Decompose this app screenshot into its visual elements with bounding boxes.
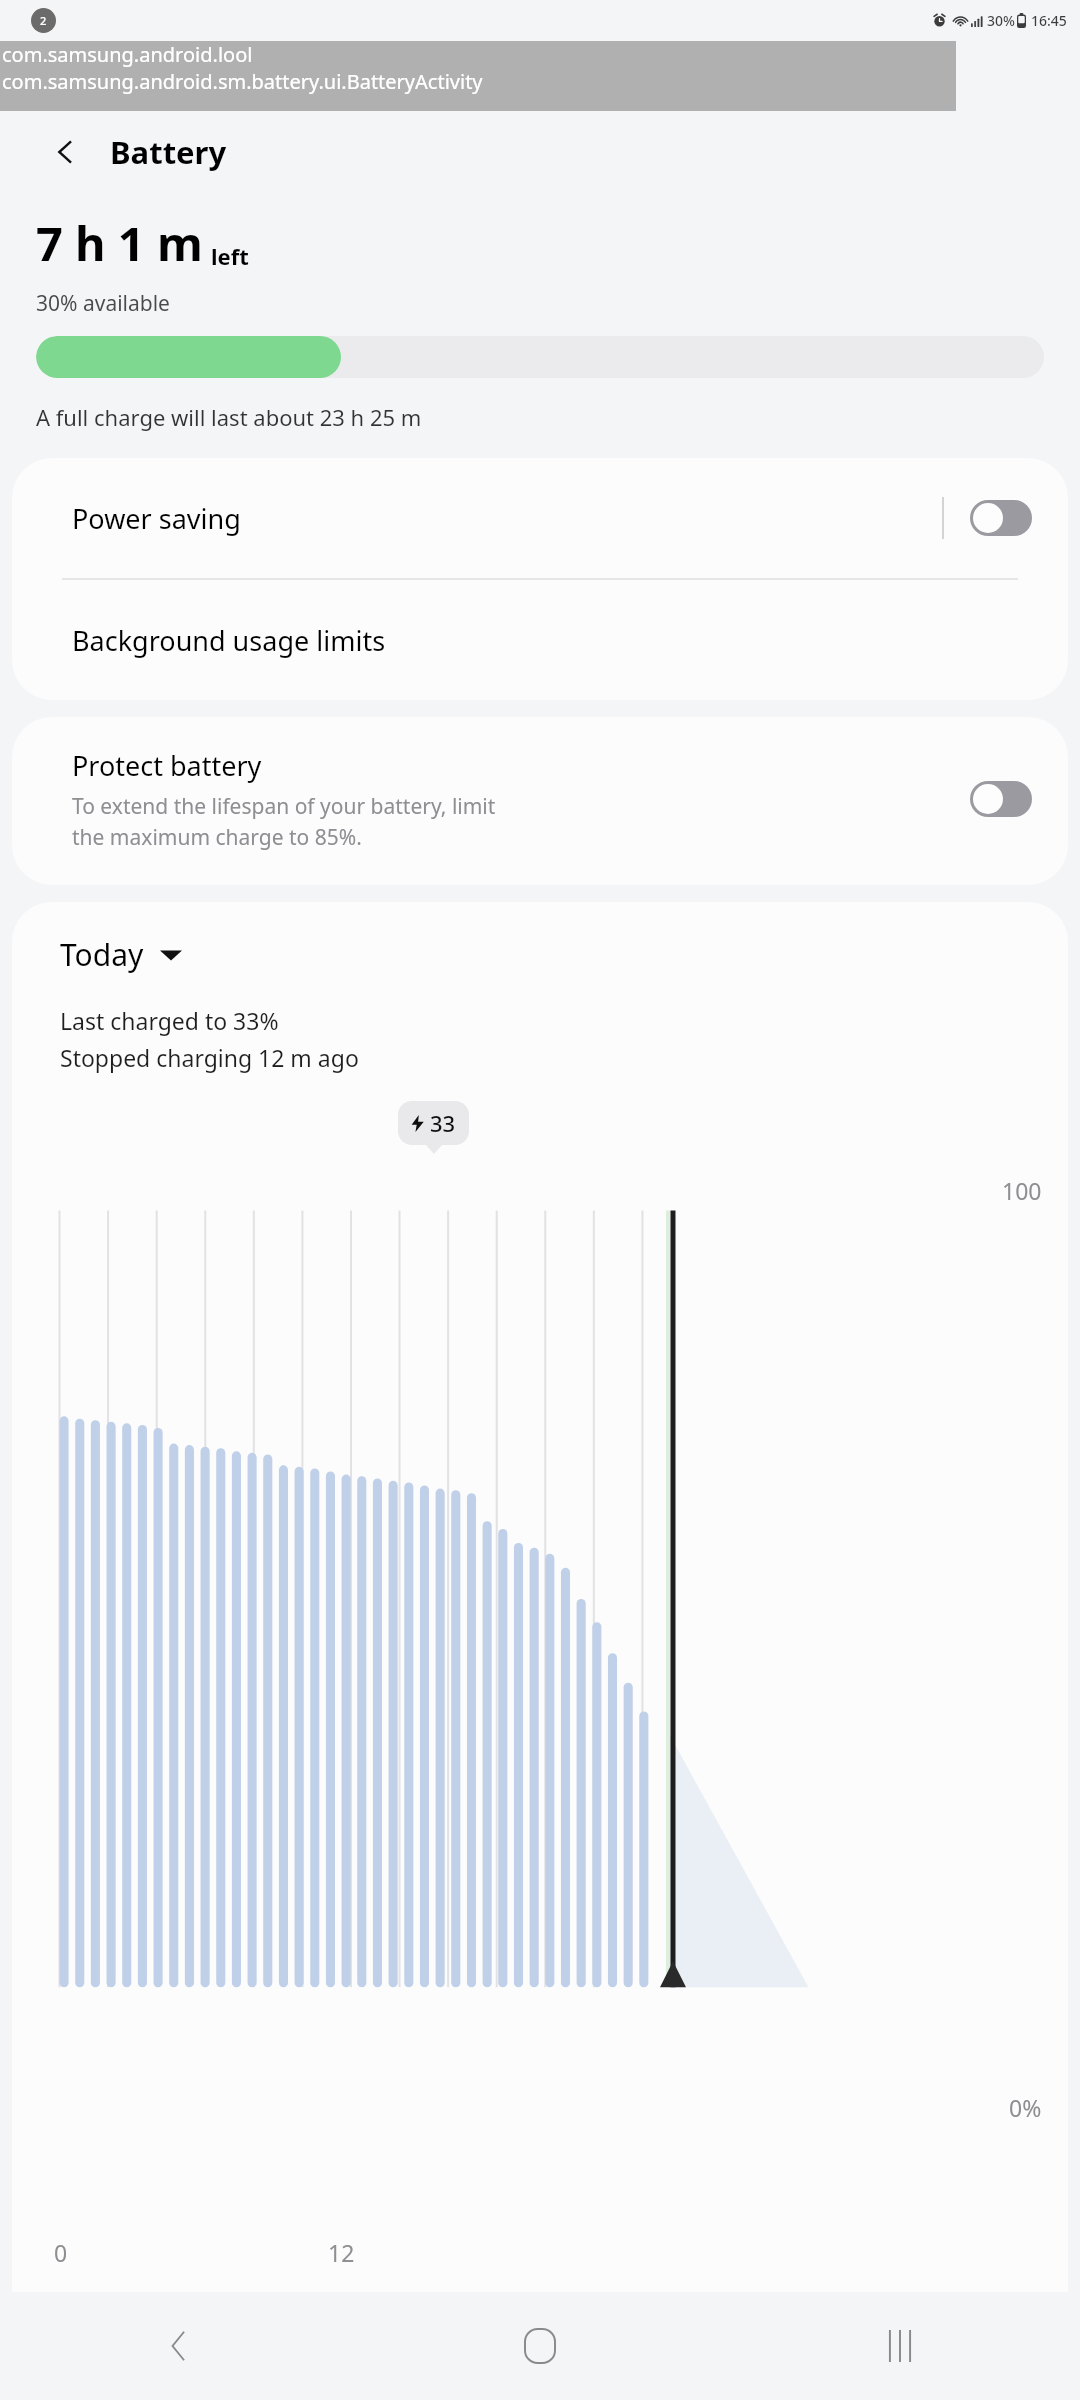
staticText: Battery: [110, 131, 227, 173]
staticText: 33: [430, 1108, 456, 1138]
staticText: com.samsung.android.sm.battery.ui.Batter…: [2, 68, 483, 95]
button[interactable]: Background usage limits: [12, 580, 1068, 700]
staticText: Stopped charging 12 m ago: [60, 1042, 359, 1073]
staticText: 100: [1002, 1175, 1042, 1206]
staticText: com.samsung.android.lool: [2, 41, 253, 68]
staticText: Background usage limits: [72, 622, 386, 659]
button[interactable]: Back: [0, 2292, 360, 2400]
staticText: 12: [328, 2237, 355, 2268]
staticText: Power saving: [72, 500, 942, 537]
button[interactable]: Today: [60, 934, 182, 975]
staticText: 0: [54, 2237, 68, 2268]
staticText: 16:45: [1031, 11, 1067, 30]
staticText: Last charged to 33%: [60, 1005, 279, 1036]
staticText: Protect battery: [72, 747, 262, 784]
button[interactable]: Toggle: [970, 500, 1032, 536]
staticText: Today: [60, 934, 144, 975]
button[interactable]: Back: [44, 130, 88, 174]
button[interactable]: Power saving: [12, 458, 1068, 578]
staticText: left: [211, 241, 249, 271]
button[interactable]: Home: [360, 2292, 720, 2400]
staticText: 2: [40, 13, 47, 28]
button[interactable]: Toggle: [970, 781, 1032, 817]
staticText: 30% available: [36, 289, 170, 318]
staticText: 0%: [1009, 2092, 1042, 2123]
button[interactable]: Recent apps: [720, 2292, 1080, 2400]
staticText: 7 h 1 m: [36, 211, 203, 275]
button[interactable]: Protect battery: [12, 717, 1068, 885]
staticText: A full charge will last about 23 h 25 m: [36, 402, 422, 432]
staticText: 30%: [987, 11, 1015, 30]
staticText: To extend the lifespan of your battery, …: [72, 792, 496, 851]
